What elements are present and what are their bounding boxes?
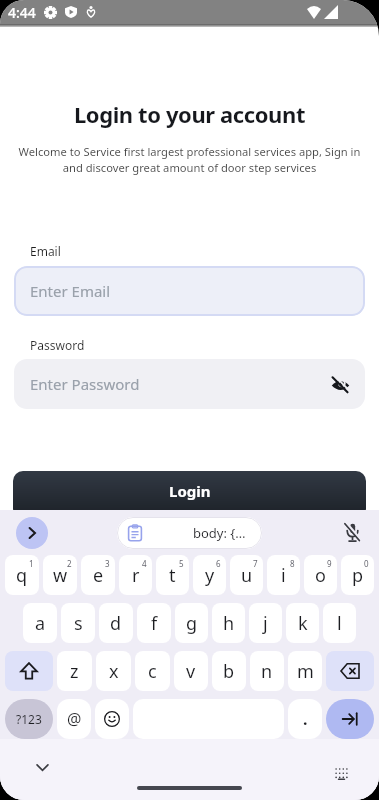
staticText: h: [223, 611, 235, 636]
staticText: Login: [169, 481, 211, 501]
staticText: 8: [290, 558, 295, 569]
staticText: 3: [105, 558, 110, 569]
staticText: Enter Email: [30, 281, 111, 301]
staticText: Enter Password: [30, 374, 140, 394]
button[interactable]: c: [135, 651, 170, 691]
button[interactable]: ?123: [5, 699, 53, 739]
staticText: l: [337, 611, 342, 636]
staticText: x: [109, 659, 119, 684]
staticText: i: [281, 563, 286, 588]
button[interactable]: m: [288, 651, 322, 691]
button[interactable]: k: [286, 603, 319, 643]
staticText: t: [169, 563, 176, 588]
button[interactable]: body: {…: [117, 517, 262, 549]
staticText: y: [205, 563, 215, 588]
button[interactable]: p: [341, 555, 374, 595]
button[interactable]: q: [5, 555, 39, 595]
button[interactable]: l: [323, 603, 356, 643]
staticText: r: [132, 563, 140, 588]
staticText: q: [16, 563, 28, 588]
button[interactable]: g: [175, 603, 208, 643]
button[interactable]: n: [250, 651, 284, 691]
staticText: @: [67, 708, 82, 730]
staticText: 0: [364, 558, 369, 569]
button[interactable]: j: [249, 603, 282, 643]
button[interactable]: d: [99, 603, 133, 643]
button[interactable]: v: [174, 651, 208, 691]
staticText: m: [297, 659, 314, 684]
button[interactable]: @: [57, 699, 91, 739]
button[interactable]: y: [193, 555, 226, 595]
button[interactable]: [5, 651, 53, 691]
button[interactable]: e: [81, 555, 115, 595]
button[interactable]: t: [156, 555, 189, 595]
staticText: Login to your account: [0, 99, 379, 129]
button[interactable]: w: [43, 555, 77, 595]
staticText: Email: [30, 243, 61, 259]
staticText: 9: [327, 558, 332, 569]
staticText: k: [298, 611, 308, 636]
staticText: g: [186, 611, 198, 636]
button[interactable]: u: [230, 555, 263, 595]
staticText: u: [241, 563, 253, 588]
staticText: 4:44: [8, 3, 36, 22]
staticText: c: [148, 659, 157, 684]
button[interactable]: Enter Password: [14, 359, 365, 409]
staticText: v: [186, 659, 196, 684]
button[interactable]: a: [23, 603, 57, 643]
button[interactable]: [16, 517, 48, 549]
staticText: Password: [30, 337, 85, 353]
button[interactable]: s: [61, 603, 95, 643]
button[interactable]: Login: [13, 471, 366, 519]
staticText: 6: [216, 558, 221, 569]
staticText: n: [261, 659, 273, 684]
staticText: j: [263, 611, 268, 636]
staticText: d: [110, 611, 122, 636]
button[interactable]: r: [119, 555, 152, 595]
staticText: Welcome to Service first largest profess…: [10, 144, 369, 175]
staticText: 2: [67, 558, 72, 569]
staticText: w: [53, 563, 68, 588]
button[interactable]: x: [96, 651, 131, 691]
staticText: e: [93, 563, 104, 588]
button[interactable]: h: [212, 603, 245, 643]
staticText: 7: [253, 558, 258, 569]
button[interactable]: i: [267, 555, 300, 595]
button[interactable]: [326, 699, 374, 739]
staticText: .: [303, 708, 308, 730]
staticText: ?123: [16, 711, 42, 727]
staticText: s: [74, 611, 83, 636]
staticText: o: [315, 563, 326, 588]
staticText: b: [223, 659, 235, 684]
staticText: body: {…: [193, 524, 246, 542]
button[interactable]: [95, 699, 129, 739]
staticText: f: [151, 611, 158, 636]
button[interactable]: o: [304, 555, 337, 595]
staticText: p: [352, 563, 364, 588]
button[interactable]: Enter Email: [14, 266, 365, 316]
staticText: z: [70, 659, 79, 684]
button[interactable]: f: [137, 603, 171, 643]
staticText: 1: [29, 558, 34, 569]
staticText: 5: [179, 558, 184, 569]
button[interactable]: b: [212, 651, 246, 691]
staticText: 4: [142, 558, 147, 569]
button[interactable]: [326, 651, 374, 691]
button[interactable]: z: [57, 651, 92, 691]
staticText: a: [35, 611, 46, 636]
button[interactable]: .: [288, 699, 322, 739]
